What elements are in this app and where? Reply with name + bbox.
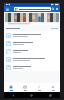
button[interactable]: Me — [46, 83, 60, 92]
button[interactable]: Recents — [41, 92, 60, 98]
button[interactable] — [4, 39, 60, 47]
button[interactable]: Search — [51, 7, 55, 11]
button[interactable]: Shared — [32, 83, 46, 92]
button[interactable] — [4, 55, 60, 63]
button[interactable] — [14, 7, 51, 11]
button[interactable] — [4, 47, 60, 55]
button[interactable] — [4, 31, 60, 39]
button[interactable] — [4, 63, 60, 71]
button[interactable] — [5, 13, 59, 25]
button[interactable]: Profile — [55, 7, 59, 11]
button[interactable]: Home — [22, 92, 41, 98]
button[interactable]: Menu — [5, 7, 10, 12]
button[interactable]: Home — [4, 83, 18, 92]
button[interactable]: Files — [18, 83, 32, 92]
button[interactable]: Back — [4, 92, 22, 98]
